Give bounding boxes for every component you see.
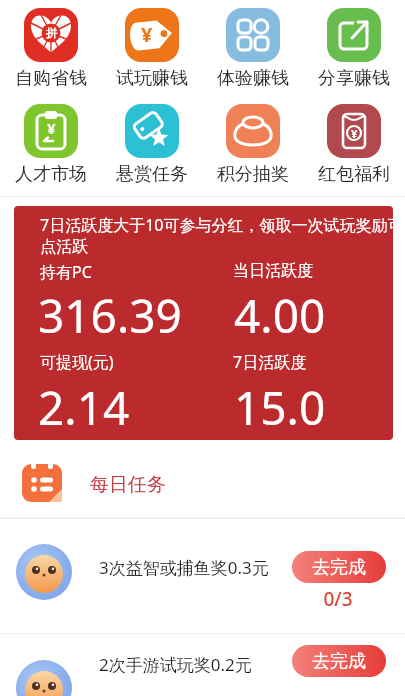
staticText: 15.0 <box>234 376 326 439</box>
button[interactable]: 分享赚钱 <box>303 8 404 90</box>
staticText: 持有PC <box>40 261 92 283</box>
button[interactable]: 2次手游试玩奖0.2元 <box>0 634 405 696</box>
staticText: 7日活跃度 <box>233 351 307 373</box>
staticText: 2.14 <box>38 376 130 439</box>
staticText: ¥ <box>351 126 358 141</box>
button[interactable]: ¥ <box>303 104 404 186</box>
button[interactable]: 去完成 <box>292 551 386 583</box>
button[interactable]: 拼 <box>0 8 101 90</box>
button[interactable]: 去完成 <box>292 645 386 677</box>
staticText: ¥ <box>141 21 153 48</box>
staticText: 人才市场 <box>15 163 87 186</box>
staticText: 316.39 <box>38 284 182 347</box>
staticText: 分享赚钱 <box>318 67 390 90</box>
staticText: 悬赏任务 <box>116 163 188 186</box>
staticText: 2次手游试玩奖0.2元 <box>99 653 252 676</box>
staticText: ¥ <box>47 118 56 138</box>
staticText: 可提现(元) <box>40 351 114 373</box>
staticText: 拼 <box>46 26 57 40</box>
button[interactable]: ¥ <box>0 104 101 186</box>
staticText: 积分抽奖 <box>217 163 289 186</box>
staticText: 7日活跃度大于10可参与分红，领取一次试玩奖励可获 <box>40 214 393 236</box>
button[interactable]: 7日活跃度大于10可参与分红，领取一次试玩奖励可获 <box>14 206 393 440</box>
staticText: 去完成 <box>312 650 366 673</box>
staticText: 每日任务 <box>90 473 166 497</box>
staticText: 体验赚钱 <box>217 67 289 90</box>
staticText: 当日活跃度 <box>233 261 313 281</box>
staticText: 3次益智或捕鱼奖0.3元 <box>99 556 269 579</box>
staticText: 自购省钱 <box>15 67 87 90</box>
staticText: 点活跃 <box>40 237 88 257</box>
staticText: 4.00 <box>234 284 326 347</box>
staticText: 去完成 <box>312 556 366 579</box>
button[interactable]: 体验赚钱 <box>202 8 303 90</box>
button[interactable] <box>22 462 62 502</box>
button[interactable]: 悬赏任务 <box>101 104 202 186</box>
staticText: 红包福利 <box>318 163 390 186</box>
button[interactable]: 积分抽奖 <box>202 104 303 186</box>
button[interactable]: ¥ <box>101 8 202 90</box>
staticText: 试玩赚钱 <box>116 67 188 90</box>
button[interactable]: 3次益智或捕鱼奖0.3元 <box>0 519 405 633</box>
staticText: 0/3 <box>310 586 366 612</box>
